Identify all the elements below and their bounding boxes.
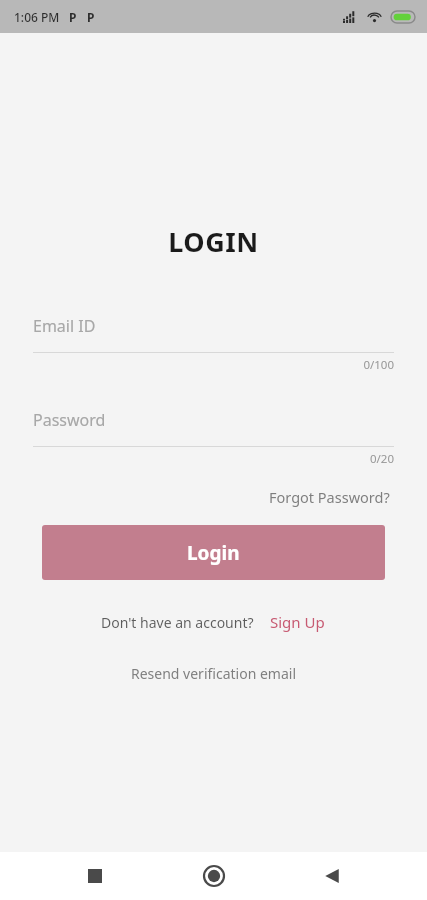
- button[interactable]: Password: [33, 401, 394, 467]
- staticText: Resend verification email: [131, 664, 297, 683]
- button[interactable]: Home: [190, 852, 238, 900]
- button[interactable]: Forgot Password?: [265, 483, 394, 511]
- staticText: LOGIN: [0, 223, 427, 260]
- staticText: Sign Up: [270, 612, 325, 632]
- button[interactable]: Recent apps: [71, 852, 119, 900]
- staticText: Forgot Password?: [269, 487, 390, 507]
- button[interactable]: Back: [308, 852, 356, 900]
- button[interactable]: Login: [42, 525, 385, 580]
- staticText: Don't have an account?: [101, 613, 254, 632]
- staticText: Password: [33, 409, 106, 431]
- staticText: Email ID: [33, 315, 96, 337]
- button[interactable]: Resend verification email: [125, 660, 303, 687]
- staticText: P: [87, 9, 95, 25]
- staticText: 0/100: [33, 357, 394, 373]
- staticText: 0/20: [33, 451, 394, 467]
- button[interactable]: Sign Up: [268, 609, 327, 635]
- staticText: P: [69, 9, 77, 25]
- staticText: 1:06 PM: [14, 9, 60, 25]
- staticText: Login: [187, 540, 240, 566]
- button[interactable]: Email ID: [33, 307, 394, 373]
